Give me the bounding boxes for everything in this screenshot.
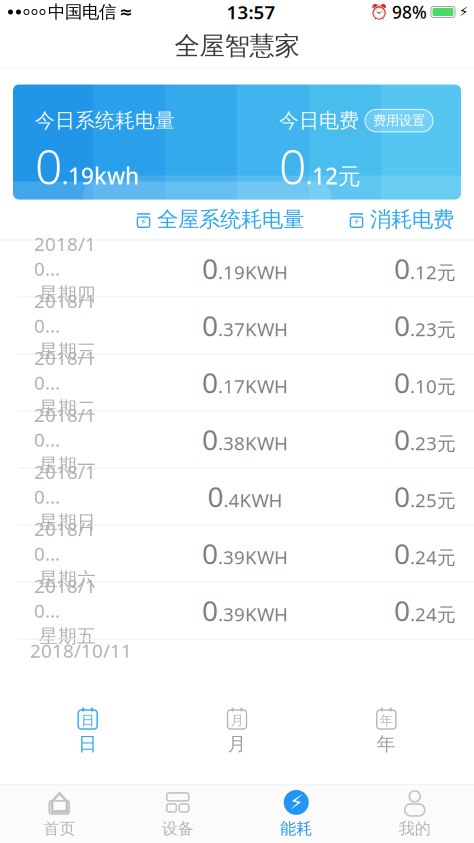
button[interactable]: 我的 — [355, 785, 474, 843]
staticText: 能耗 — [280, 819, 312, 839]
staticText: 星期日 — [39, 511, 96, 534]
staticText: 日 — [81, 712, 94, 729]
staticText: ⏰ — [370, 4, 388, 20]
staticText: 0 — [394, 535, 410, 572]
staticText: 2018/10... — [34, 459, 96, 509]
staticText: 星期一 — [39, 454, 96, 477]
button[interactable]: 月 — [162, 704, 312, 758]
staticText: .39KWH — [218, 602, 288, 626]
staticText: ⚡︎ — [289, 791, 303, 814]
staticText: .37KWH — [218, 317, 288, 341]
staticText: 全屋智慧家 — [174, 30, 299, 61]
staticText: ⌂ — [48, 780, 71, 821]
staticText: .19kwh — [62, 161, 139, 191]
staticText: 设备 — [162, 819, 194, 839]
staticText: 中国电信 — [48, 1, 116, 23]
staticText: 年 — [380, 712, 393, 729]
staticText: 0 — [394, 307, 410, 344]
staticText: 费用设置 — [373, 112, 425, 129]
staticText: 消耗电费 — [370, 206, 454, 233]
staticText: .24元 — [410, 602, 456, 626]
staticText: 月 — [230, 712, 243, 729]
staticText: 13:57 — [226, 0, 275, 24]
staticText: 星期四 — [39, 283, 96, 306]
button[interactable]: 费用设置 — [365, 109, 433, 132]
button[interactable]: ⌂ — [0, 785, 118, 843]
staticText: ≈ — [119, 3, 132, 21]
staticText: 年 — [377, 732, 396, 755]
staticText: 0 — [394, 364, 410, 401]
staticText: ⚡︎ — [459, 4, 468, 19]
staticText: .12元 — [410, 260, 456, 284]
staticText: 0 — [202, 421, 218, 458]
staticText: .17KWH — [218, 374, 288, 398]
staticText: 0 — [202, 307, 218, 344]
staticText: 0 — [394, 421, 410, 458]
staticText: 今日电费 — [279, 108, 359, 133]
staticText: ⚡︎ — [353, 217, 360, 227]
staticText: 0 — [202, 364, 218, 401]
staticText: 0 — [394, 250, 410, 287]
staticText: .39KWH — [218, 545, 288, 569]
staticText: 星期二 — [39, 397, 96, 420]
staticText: ⚡︎ — [140, 217, 147, 227]
staticText: 2018/10... — [34, 288, 96, 338]
staticText: 首页 — [43, 819, 75, 839]
staticText: 我的 — [399, 819, 431, 839]
staticText: 星期五 — [39, 625, 96, 648]
staticText: 0 — [394, 478, 410, 515]
staticText: 今日系统耗电量 — [35, 108, 175, 133]
staticText: 0 — [202, 535, 218, 572]
staticText: 2018/10... — [34, 231, 96, 281]
staticText: 0 — [35, 134, 62, 198]
staticText: 月 — [227, 732, 246, 755]
staticText: .23元 — [410, 431, 456, 455]
button[interactable]: 年 — [312, 704, 461, 758]
staticText: .23元 — [410, 317, 456, 341]
staticText: .4KWH — [223, 488, 282, 512]
staticText: .38KWH — [218, 431, 288, 455]
staticText: 0 — [207, 478, 223, 515]
staticText: 0 — [202, 592, 218, 629]
staticText: 日 — [78, 732, 97, 755]
button[interactable]: 日 — [13, 704, 162, 758]
staticText: 2018/10... — [34, 345, 96, 395]
staticText: 0 — [394, 592, 410, 629]
staticText: 0 — [279, 134, 306, 198]
staticText: .10元 — [410, 374, 456, 398]
staticText: 98% — [392, 0, 427, 23]
staticText: 0 — [202, 250, 218, 287]
staticText: 2018/10... — [34, 402, 96, 452]
button[interactable]: 设备 — [118, 785, 237, 843]
staticText: .25元 — [410, 488, 456, 512]
staticText: .24元 — [410, 545, 456, 569]
staticText: 2018/10... — [34, 516, 96, 566]
staticText: .12元 — [306, 161, 361, 191]
staticText: .19KWH — [218, 260, 288, 284]
staticText: 2018/10/11 — [30, 638, 132, 663]
button[interactable]: ⚡︎ — [237, 785, 355, 843]
staticText: 2018/10... — [34, 573, 96, 623]
staticText: 星期六 — [39, 568, 96, 591]
staticText: 星期三 — [39, 340, 96, 363]
staticText: 全屋系统耗电量 — [157, 206, 304, 233]
